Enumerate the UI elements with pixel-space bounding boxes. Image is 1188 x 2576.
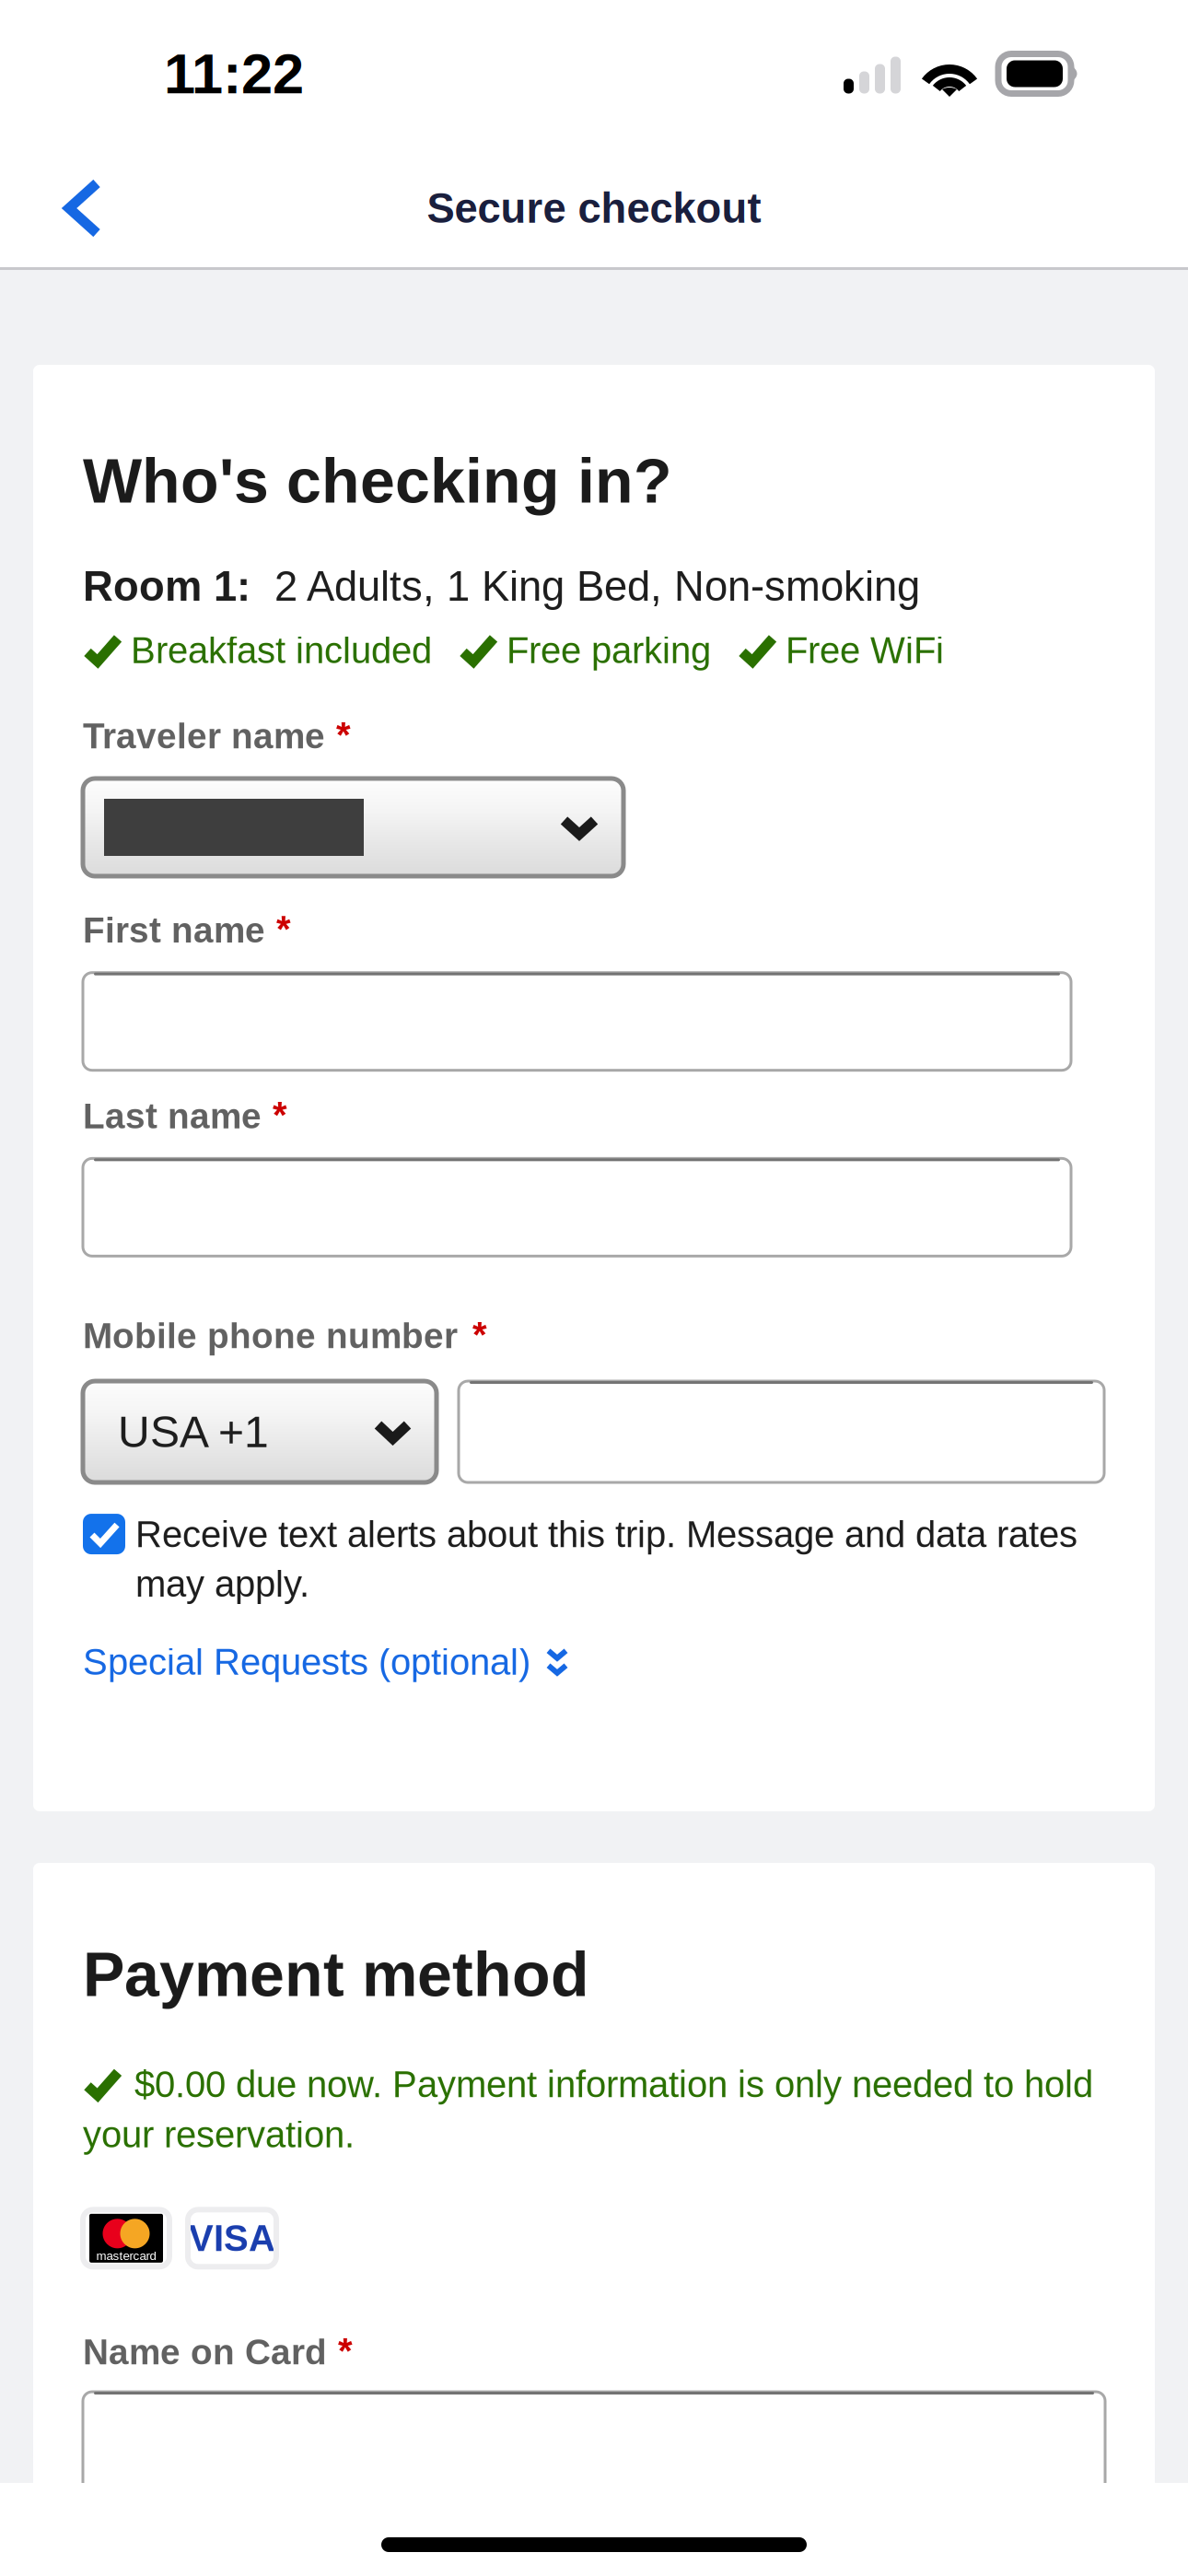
staticText: Last name	[83, 1096, 262, 1136]
staticText: Secure checkout	[427, 185, 761, 232]
staticText: *	[338, 2330, 353, 2371]
staticText: $0.00 due now. Payment information is on…	[134, 2064, 1093, 2105]
staticText: Mobile phone number	[83, 1316, 458, 1356]
staticText: Breakfast included	[131, 630, 432, 671]
button[interactable]: Receive text alerts about this trip. Mes…	[83, 1514, 1077, 1604]
staticText: Payment method	[83, 1939, 589, 2009]
button[interactable]: Country code	[83, 1381, 437, 1482]
staticText: may apply.	[135, 1563, 309, 1604]
staticText: your reservation.	[83, 2114, 355, 2155]
staticText: 2 Adults, 1 King Bed, Non-smoking	[250, 563, 920, 610]
staticText: Special Requests (optional)	[83, 1641, 530, 1682]
button[interactable]: Phone number	[459, 1381, 1104, 1482]
staticText: Free parking	[507, 630, 711, 671]
staticText: *	[472, 1314, 487, 1355]
staticText: Name on Card	[83, 2332, 327, 2372]
staticText: Room 1:	[83, 563, 250, 610]
button[interactable]: Special Requests (optional)	[83, 1641, 569, 1682]
button[interactable]: Name on Card	[83, 2392, 1105, 2521]
staticText: 11:22	[164, 42, 304, 105]
staticText: mastercard	[96, 2249, 156, 2263]
staticText: Who's checking in?	[83, 446, 672, 516]
staticText: First name	[83, 910, 265, 950]
button[interactable]: Back	[32, 156, 134, 261]
staticText: Traveler name	[83, 716, 325, 756]
staticText: Free WiFi	[786, 630, 944, 671]
staticText: Receive text alerts about this trip. Mes…	[135, 1514, 1077, 1555]
button[interactable]: First name	[83, 973, 1071, 1070]
staticText: *	[336, 714, 351, 755]
button[interactable]: Traveler name	[83, 779, 623, 876]
staticText: *	[273, 1094, 287, 1135]
button[interactable]: Last name	[83, 1158, 1071, 1256]
staticText: USA +1	[118, 1407, 269, 1456]
staticText: *	[276, 908, 291, 950]
staticText: VISA	[189, 2218, 275, 2259]
